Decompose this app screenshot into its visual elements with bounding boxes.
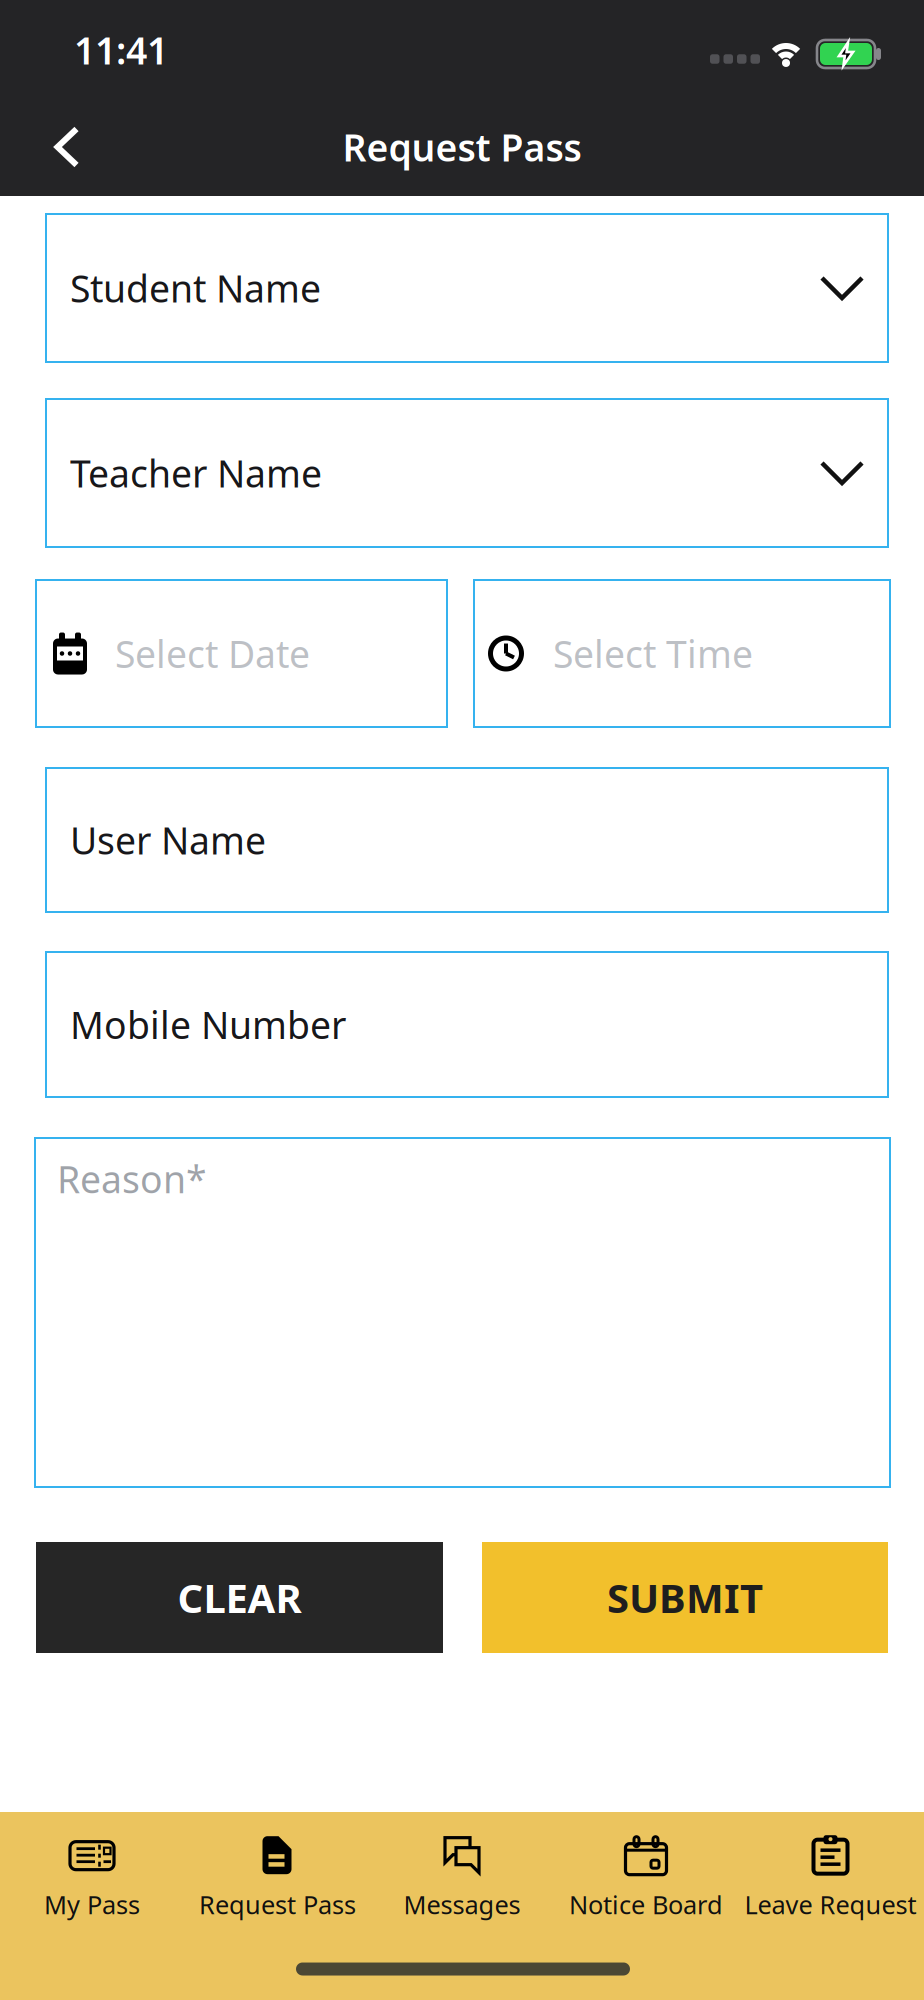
button[interactable]: Leave Request [744, 1835, 916, 1921]
button[interactable] [53, 126, 80, 168]
staticText: Request Pass [199, 1888, 356, 1921]
staticText: Student Name [70, 263, 321, 313]
staticText: Leave Request [744, 1888, 916, 1921]
staticText: Teacher Name [70, 448, 322, 498]
staticText: Reason* [57, 1154, 207, 1204]
staticText: Select Time [553, 629, 753, 678]
staticText: CLEAR [177, 1571, 301, 1624]
button[interactable]: Notice Board [569, 1835, 723, 1921]
staticText: Mobile Number [70, 1000, 346, 1049]
button[interactable]: User Name [46, 768, 888, 912]
button[interactable]: Teacher Name [46, 399, 888, 547]
staticText: Messages [403, 1888, 520, 1921]
button[interactable]: My Pass [44, 1835, 140, 1921]
button[interactable]: Reason* [35, 1138, 890, 1487]
button[interactable]: Select Date [36, 580, 447, 727]
staticText: My Pass [44, 1888, 140, 1921]
staticText: Select Date [115, 629, 310, 678]
button[interactable]: CLEAR [36, 1542, 443, 1653]
button[interactable]: Mobile Number [46, 952, 888, 1097]
staticText: Notice Board [569, 1888, 723, 1921]
button[interactable]: Request Pass [199, 1835, 356, 1921]
staticText: 11:41 [74, 25, 168, 75]
button[interactable]: Student Name [46, 214, 888, 362]
staticText: SUBMIT [607, 1571, 763, 1624]
button[interactable]: SUBMIT [482, 1542, 888, 1653]
staticText: Request Pass [342, 122, 581, 172]
staticText: User Name [70, 815, 266, 865]
button[interactable]: Messages [403, 1835, 520, 1921]
button[interactable]: Select Time [474, 580, 890, 727]
